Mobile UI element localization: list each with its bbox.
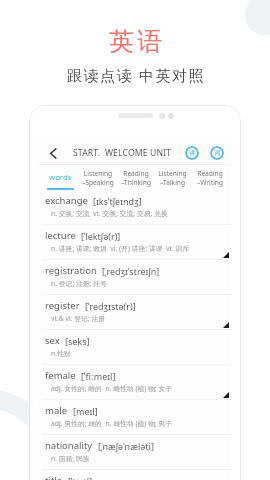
staticText: 讲 — [189, 149, 196, 157]
staticText: registration — [45, 264, 97, 277]
button[interactable]: registration — [38, 260, 231, 295]
staticText: words — [49, 172, 72, 183]
staticText: [ˈtaɪtl] — [68, 475, 93, 480]
staticText: n. 交换; 交流 vt. 交换; 交流; 交易; 兑换 — [51, 209, 168, 218]
button[interactable]: Back — [45, 145, 61, 161]
staticText: n. 讲座; 讲课; 教训 vi. (开) 讲座; 讲课 vt. 训斥 — [51, 244, 190, 253]
staticText: sex — [45, 334, 60, 347]
staticText: Listening –Talking — [158, 169, 187, 187]
button[interactable]: nationality — [38, 435, 231, 470]
button[interactable]: lecture — [38, 225, 231, 260]
button[interactable]: sex — [38, 330, 231, 365]
staticText: Reading –Writing — [197, 169, 223, 187]
button[interactable]: words — [41, 165, 79, 190]
staticText: nationality — [45, 439, 93, 452]
staticText: [ˈfiːmeɪl] — [81, 370, 116, 382]
button[interactable]: register — [38, 295, 231, 330]
staticText: [seks] — [65, 335, 90, 347]
staticText: register — [45, 299, 80, 312]
staticText: male — [45, 404, 68, 417]
button[interactable]: exchange — [38, 190, 231, 225]
button[interactable]: 讲 — [185, 146, 199, 160]
button[interactable]: male — [38, 400, 231, 435]
staticText: vt.& vi. 登记; 注册 — [51, 314, 106, 323]
staticText: female — [45, 369, 76, 382]
button[interactable]: Reading –Thinking — [117, 165, 154, 190]
staticText: [meɪl] — [73, 405, 98, 417]
staticText: [ˌredʒɪˈstreɪʃn] — [102, 265, 160, 277]
staticText: Listening –Speaking — [82, 169, 114, 187]
staticText: [ˈlektʃə(r)] — [81, 230, 121, 242]
button[interactable]: Listening –Talking — [154, 165, 191, 190]
staticText: [ˌnæʃəˈnæləti] — [98, 440, 154, 452]
staticText: adj. 女性的; 雌的 n. 雌性动 (植) 物; 女子 — [51, 384, 173, 393]
button[interactable]: Reading –Writing — [191, 165, 228, 190]
button[interactable]: Listening –Speaking — [79, 165, 117, 190]
button[interactable]: 词 — [210, 146, 224, 160]
staticText: lecture — [45, 229, 76, 242]
staticText: 词 — [214, 149, 221, 157]
button[interactable]: female — [38, 365, 231, 400]
staticText: n.性别 — [51, 349, 71, 358]
staticText: exchange — [45, 194, 88, 207]
staticText: [ɪksˈtʃeɪndʒ] — [93, 195, 142, 207]
staticText: adj. 男性的; 雄的 n. 雄性动 (植) 物; 男子 — [51, 419, 173, 428]
staticText: START. WELCOME UNIT — [73, 147, 172, 159]
staticText: title — [45, 474, 63, 480]
button[interactable]: title — [38, 470, 231, 480]
staticText: Reading –Thinking — [121, 169, 151, 187]
staticText: n. 国籍; 民族 — [51, 454, 90, 463]
staticText: 跟读点读 中英对照 — [67, 65, 206, 85]
staticText: 英语 — [109, 26, 166, 57]
staticText: n. 登记; 注册; 挂号 — [51, 279, 107, 288]
staticText: [ˈredʒɪstə(r)] — [85, 300, 136, 312]
